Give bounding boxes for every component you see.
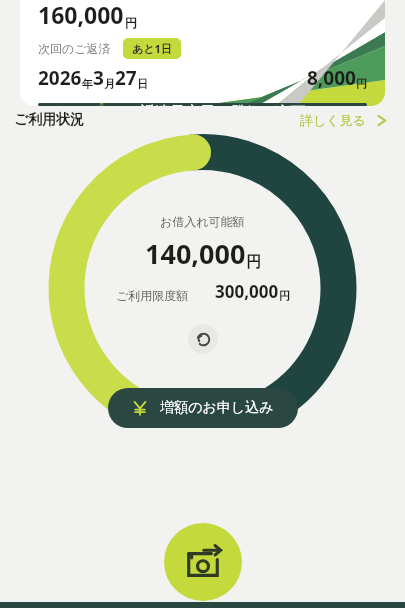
staticText: ご利用限度額 (116, 288, 189, 303)
staticText: 300,000 (215, 280, 279, 303)
staticText: 27 (115, 65, 137, 91)
staticText: あと1日 (132, 41, 172, 56)
staticText: 増額のお申し込み (160, 399, 274, 417)
staticText: 次回のご返済 (38, 41, 111, 56)
staticText: 160,000 (38, 0, 124, 30)
staticText: 2026 (38, 65, 82, 91)
staticText: ご返済予定日の登録・変更 (125, 103, 306, 106)
button[interactable]: 詳しく見る (296, 108, 391, 132)
button[interactable]: お借入れ (164, 523, 242, 601)
button[interactable]: ご返済予定日の登録・変更 (38, 103, 367, 106)
staticText: 8,000 (307, 65, 356, 91)
staticText: ご利用状況 (14, 111, 85, 129)
staticText: 詳しく見る (300, 112, 366, 128)
staticText: 円 (246, 253, 261, 272)
staticText: 月 (104, 77, 115, 91)
staticText: 円 (279, 289, 290, 303)
staticText: 140,000 (145, 235, 246, 272)
staticText: 円 (356, 77, 367, 91)
staticText: 年 (82, 77, 93, 91)
staticText: 3 (93, 65, 104, 91)
staticText: 日 (137, 77, 148, 91)
staticText: 円 (125, 15, 137, 30)
button[interactable]: 更新 (188, 324, 218, 354)
button[interactable]: 増額のお申し込み (108, 388, 298, 428)
staticText: お借入れ可能額 (160, 214, 245, 229)
